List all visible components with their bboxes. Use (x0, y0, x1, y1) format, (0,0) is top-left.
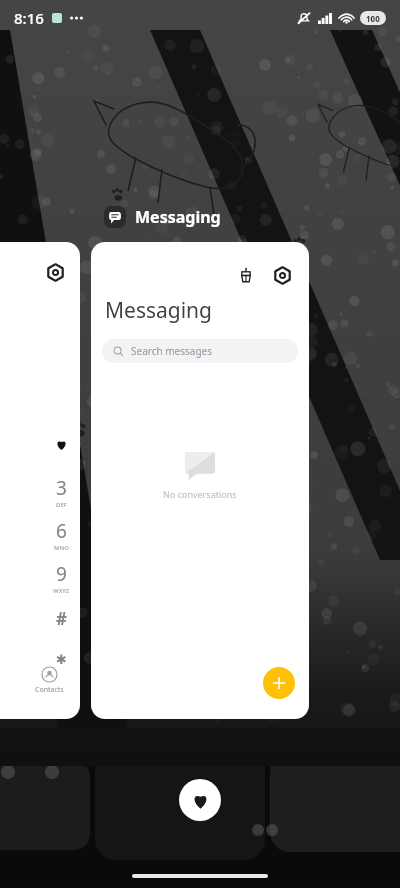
staticText: Messaging (135, 206, 221, 228)
staticText: 8:16 (14, 8, 44, 28)
staticText: 3 (56, 475, 67, 501)
button[interactable]: Clean up (91, 242, 309, 719)
button[interactable]: New conversation (263, 667, 295, 699)
staticText: DEF (56, 501, 67, 509)
staticText: 100 (366, 13, 380, 24)
staticText: MNO (54, 544, 69, 552)
staticText: # (56, 607, 67, 630)
button[interactable]: Settings (0, 242, 80, 719)
staticText: 9 (56, 561, 67, 587)
button[interactable]: Clean up (233, 262, 259, 288)
staticText: No conversations (163, 488, 237, 500)
button[interactable]: Settings (269, 262, 295, 288)
staticText: Contacts (35, 685, 64, 695)
button[interactable]: Settings (44, 261, 66, 283)
staticText: ✱ (56, 652, 67, 667)
button[interactable]: Search messages (102, 339, 298, 363)
staticText: WXYZ (53, 587, 70, 595)
button[interactable]: Favorite (179, 779, 221, 821)
staticText: Search messages (131, 344, 213, 358)
staticText: 6 (56, 518, 67, 544)
staticText: Messaging (105, 296, 213, 325)
